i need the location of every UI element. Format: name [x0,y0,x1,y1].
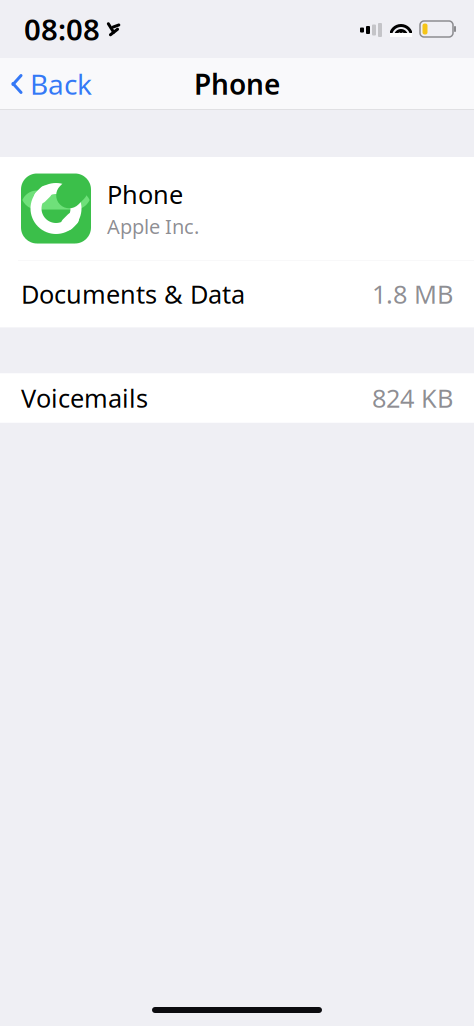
staticText: 08:08 [24,9,100,48]
staticText: 1.8 MB [372,277,453,311]
button[interactable]: Voicemails [0,373,474,422]
staticText: Voicemails [21,381,148,415]
staticText: Phone [194,65,280,103]
staticText: Back [30,65,92,103]
staticText: Documents & Data [21,277,245,311]
staticText: 824 KB [372,381,453,415]
button[interactable]: Documents & Data [0,260,474,327]
staticText: Apple Inc. [107,213,199,240]
button[interactable]: Back [0,58,106,110]
staticText: Phone [107,177,183,211]
